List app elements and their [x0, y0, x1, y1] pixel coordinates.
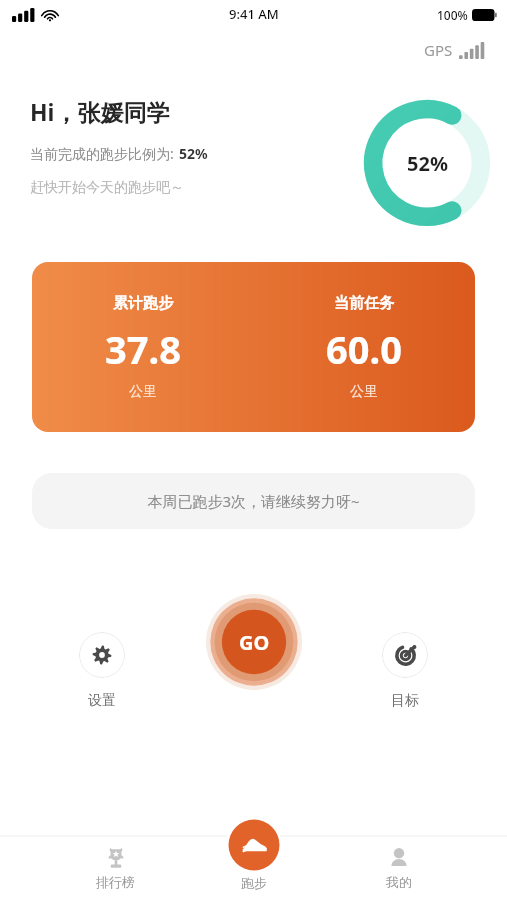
button[interactable]: 跑步 [226, 817, 282, 891]
other: 我的 [388, 847, 410, 869]
button[interactable]: 累计跑步 [32, 262, 475, 432]
staticText: 公里 [129, 383, 157, 401]
other: 跑步 [240, 831, 268, 859]
button[interactable]: 排行榜 [78, 843, 153, 894]
staticText: 我的 [386, 874, 412, 890]
staticText: GPS [424, 40, 453, 60]
staticText: GO [239, 629, 270, 656]
staticText: 排行榜 [96, 874, 135, 890]
staticText: 目标 [391, 692, 419, 710]
staticText: 37.8 [105, 323, 181, 375]
staticText: 设置 [88, 692, 116, 710]
button[interactable]: 目标 [376, 594, 434, 672]
staticText: 9:41 AM [229, 5, 279, 23]
staticText: 100% [437, 7, 468, 23]
staticText: 当前任务 [334, 294, 394, 313]
button[interactable]: 我的 [368, 843, 430, 894]
other: 设置 [92, 645, 112, 665]
other: 排行榜 [105, 847, 127, 869]
staticText: 累计跑步 [113, 294, 173, 313]
staticText: 52% [407, 150, 448, 177]
staticText: 跑步 [241, 875, 267, 891]
button[interactable]: 本周已跑步3次，请继续努力呀~ [32, 473, 475, 529]
staticText: Hi，张媛同学 [30, 96, 170, 127]
staticText: 60.0 [326, 323, 402, 375]
staticText: 赶快开始今天的跑步吧～ [30, 179, 184, 197]
button[interactable]: GO [204, 594, 304, 694]
staticText: 当前完成的跑步比例为: [30, 144, 174, 163]
button[interactable]: 设置 [73, 594, 131, 672]
staticText: 公里 [350, 383, 378, 401]
other: 目标 [395, 645, 416, 666]
staticText: 本周已跑步3次，请继续努力呀~ [147, 491, 360, 511]
staticText: 52% [179, 144, 208, 163]
